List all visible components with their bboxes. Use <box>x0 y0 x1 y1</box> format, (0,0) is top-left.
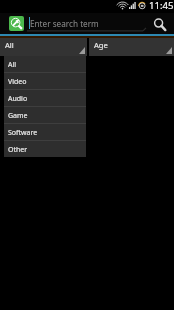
staticText: Enter search term <box>30 18 99 29</box>
staticText: All <box>5 40 14 50</box>
button[interactable]: App logo <box>9 16 24 31</box>
staticText: Age <box>94 40 108 50</box>
staticText: 11:45 <box>149 0 174 12</box>
button[interactable]: Video <box>4 72 86 89</box>
button[interactable]: Other <box>4 140 86 157</box>
staticText: All <box>8 60 17 70</box>
staticText: Audio <box>8 94 28 104</box>
button[interactable]: Enter search term <box>27 14 146 32</box>
button[interactable]: Software <box>4 123 86 140</box>
button[interactable]: Game <box>4 106 86 123</box>
button[interactable]: Audio <box>4 89 86 106</box>
button[interactable]: Search <box>151 16 168 33</box>
staticText: Game <box>8 111 28 121</box>
button[interactable]: All <box>4 56 86 72</box>
button[interactable]: Age <box>89 38 174 56</box>
staticText: Other <box>8 145 28 155</box>
staticText: Video <box>8 77 27 87</box>
staticText: Software <box>8 128 38 138</box>
button[interactable]: All <box>0 38 87 56</box>
